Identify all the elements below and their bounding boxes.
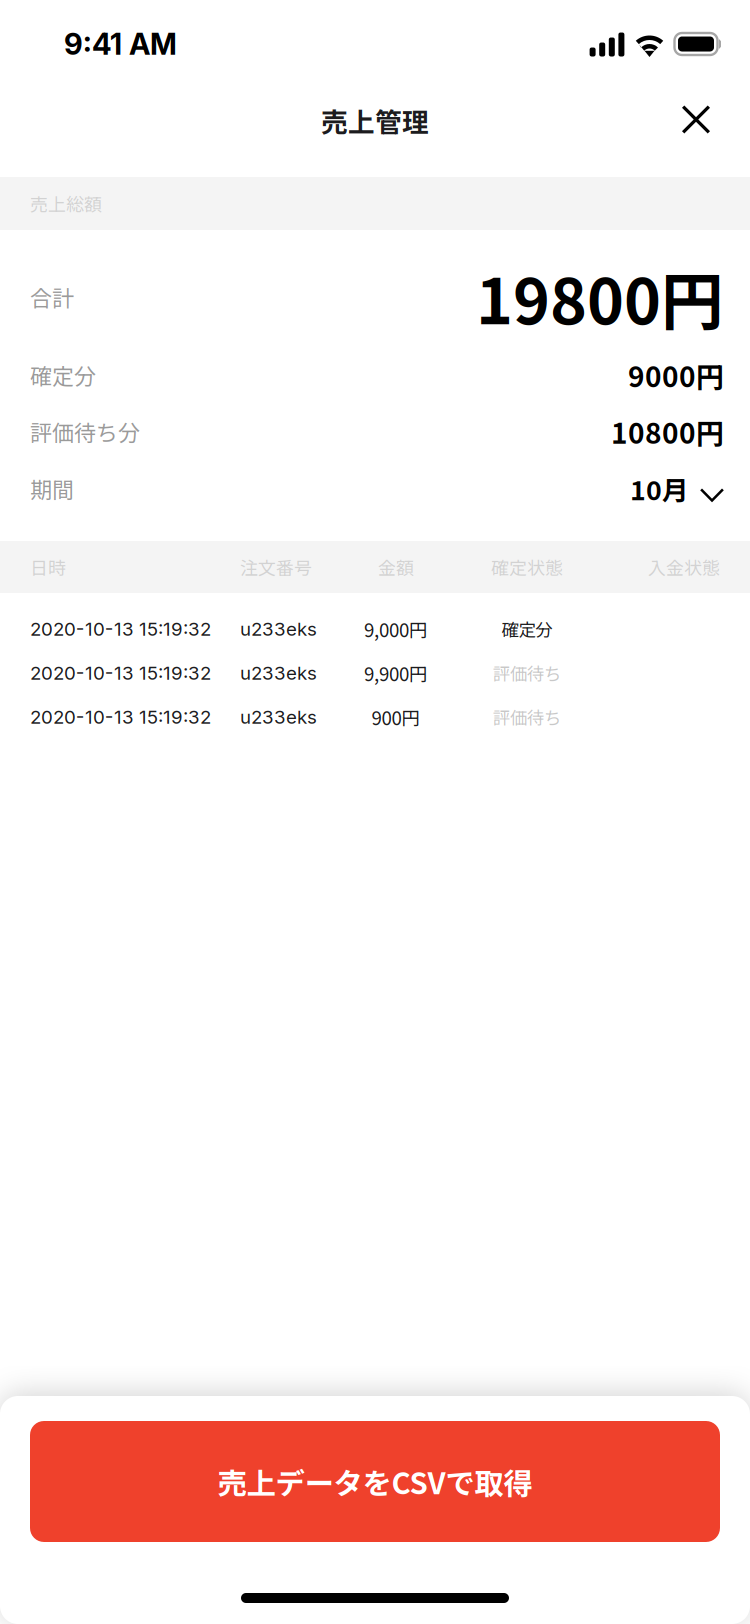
- staticText: 10月: [630, 469, 689, 508]
- button[interactable]: 期間: [30, 460, 724, 517]
- staticText: 評価待ち分: [30, 416, 140, 447]
- staticText: 確定分: [30, 359, 96, 391]
- staticText: 9:41 AM: [64, 26, 177, 62]
- staticText: 2020-10-13 15:19:32: [30, 662, 211, 684]
- staticText: 19800円: [476, 252, 724, 342]
- staticText: 売上総額: [30, 190, 102, 217]
- staticText: 売上データをCSVで取得: [217, 1460, 532, 1503]
- staticText: 評価待ち: [493, 704, 561, 730]
- staticText: 2020-10-13 15:19:32: [30, 706, 211, 728]
- button[interactable]: Close: [668, 91, 724, 147]
- staticText: 評価待ち: [493, 660, 561, 686]
- staticText: 10800円: [611, 411, 724, 452]
- button[interactable]: 売上データをCSVで取得: [30, 1421, 720, 1542]
- staticText: 確定分: [501, 616, 552, 642]
- staticText: 2020-10-13 15:19:32: [30, 618, 211, 640]
- staticText: 確定状態: [491, 554, 563, 580]
- staticText: 期間: [30, 473, 74, 504]
- staticText: 合計: [30, 281, 74, 313]
- staticText: 日時: [30, 554, 66, 580]
- staticText: u233eks: [240, 662, 317, 684]
- staticText: 9000円: [628, 355, 724, 395]
- staticText: 注文番号: [240, 554, 312, 580]
- staticText: 売上管理: [321, 101, 429, 140]
- staticText: u233eks: [240, 706, 317, 728]
- staticText: 900円: [371, 703, 420, 730]
- staticText: u233eks: [240, 618, 317, 640]
- staticText: 金額: [378, 554, 414, 580]
- staticText: 9,900円: [364, 659, 428, 686]
- staticText: 入金状態: [648, 554, 720, 580]
- staticText: 9,000円: [364, 615, 428, 642]
